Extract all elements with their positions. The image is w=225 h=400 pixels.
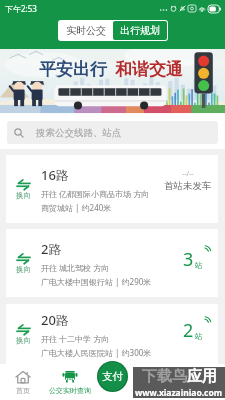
button[interactable]: 换向 bbox=[6, 155, 218, 223]
staticText: 应用 bbox=[187, 367, 217, 386]
button[interactable]: 支付 bbox=[97, 361, 128, 392]
staticText: 换向 bbox=[16, 191, 31, 200]
staticText: 2路 bbox=[41, 240, 62, 258]
button[interactable]: 搜索公交线路、站点 bbox=[7, 121, 218, 144]
staticText: www.xiazainiao.com bbox=[135, 387, 223, 398]
staticText: 商贸城站 | 约240米 bbox=[41, 202, 112, 213]
staticText: 换向 bbox=[16, 265, 31, 274]
staticText: --/-- bbox=[182, 169, 194, 179]
staticText: 出行规划 bbox=[120, 24, 160, 37]
button[interactable]: 换向 bbox=[6, 229, 218, 297]
staticText: 搜索公交线路、站点 bbox=[36, 127, 122, 139]
staticText: 开往 十二中学 方向 bbox=[41, 333, 110, 344]
staticText: 平安出行 bbox=[39, 59, 107, 80]
staticText: 下午2:53 bbox=[5, 3, 37, 14]
staticText: 16路 bbox=[41, 166, 69, 184]
button[interactable]: 换向 bbox=[12, 179, 35, 200]
staticText: 站 bbox=[195, 332, 203, 341]
staticText: 广电大楼人民医院站 | 约300米 bbox=[41, 347, 152, 358]
staticText: 开往 城北驾校 方向 bbox=[41, 262, 110, 273]
staticText: 公交实时查询 bbox=[49, 386, 91, 395]
staticText: 开往 亿都国际小商品市场 方向 bbox=[41, 188, 150, 199]
staticText: 首页 bbox=[16, 386, 30, 395]
staticText: 换向 bbox=[16, 336, 31, 345]
staticText: 广电大楼中国银行站 | 约290米 bbox=[41, 276, 152, 287]
button[interactable]: 换向 bbox=[12, 324, 35, 345]
staticText: 实时公交 bbox=[66, 24, 106, 37]
staticText: 首站未发车 bbox=[164, 180, 212, 192]
staticText: 2 bbox=[183, 318, 194, 343]
staticText: 3 bbox=[183, 247, 194, 272]
button[interactable]: 换向 bbox=[12, 253, 35, 274]
button[interactable]: 首页 bbox=[0, 364, 45, 400]
button[interactable]: 实时公交 bbox=[59, 21, 113, 40]
button[interactable]: 公交实时查询 bbox=[45, 364, 95, 400]
staticText: 下载鸟 bbox=[142, 367, 187, 386]
staticText: 支付 bbox=[102, 370, 123, 383]
staticText: 和谐交通 bbox=[115, 59, 183, 80]
staticText: 20路 bbox=[41, 311, 69, 329]
button[interactable]: 出行规划 bbox=[113, 21, 167, 40]
staticText: 站 bbox=[195, 261, 203, 270]
button[interactable]: 换向 bbox=[6, 304, 218, 364]
